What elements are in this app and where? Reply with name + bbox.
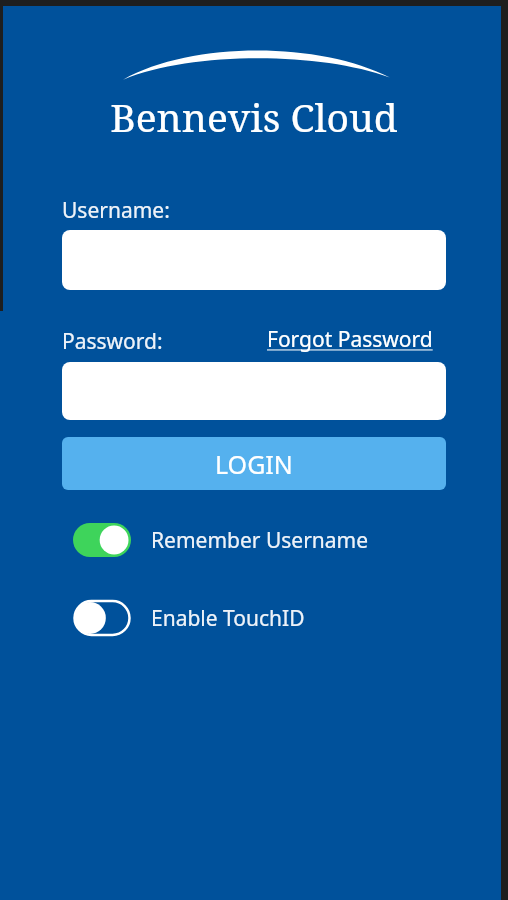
other: Remember Username	[73, 522, 131, 558]
button[interactable]: Password field	[62, 362, 446, 420]
button[interactable]: Remember Username	[73, 521, 403, 559]
button[interactable]: Forgot Password	[266, 323, 433, 355]
staticText: Username:	[62, 196, 170, 225]
button[interactable]: Enable TouchID	[73, 599, 403, 637]
button[interactable]: LOGIN	[62, 437, 446, 490]
staticText: Forgot Password	[267, 325, 433, 354]
staticText: Enable TouchID	[151, 604, 305, 633]
staticText: Remember Username	[151, 526, 369, 555]
staticText: Bennevis Cloud	[110, 90, 398, 140]
button[interactable]: Username field	[62, 230, 446, 290]
other: Enable TouchID	[73, 600, 131, 636]
staticText: Password:	[62, 327, 163, 356]
staticText: LOGIN	[215, 447, 293, 481]
